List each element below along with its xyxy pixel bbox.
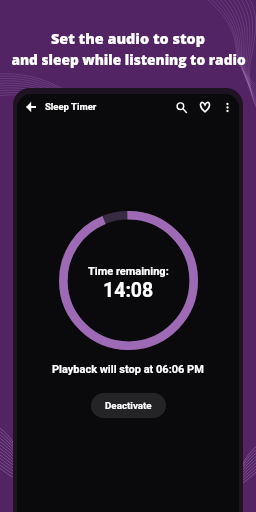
staticText: Set the audio to stop	[51, 29, 205, 49]
button[interactable]: Search	[171, 97, 191, 117]
button[interactable]: Deactivate	[91, 393, 166, 418]
staticText: Time remaining:	[88, 265, 169, 278]
staticText: 14:08	[103, 279, 154, 302]
staticText: and sleep while listening to radio	[11, 50, 246, 69]
staticText: Sleep Timer	[45, 101, 97, 112]
staticText: Deactivate	[105, 400, 152, 411]
button[interactable]: Favorite	[195, 97, 215, 117]
button[interactable]: Back	[21, 97, 41, 117]
button[interactable]: More options	[217, 97, 237, 117]
staticText: Playback will stop at 06:06 PM	[52, 363, 204, 376]
